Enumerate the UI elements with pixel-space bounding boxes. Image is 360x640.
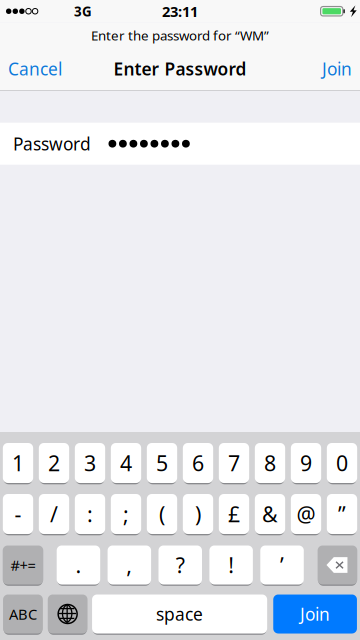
staticText: . [75, 551, 81, 579]
button[interactable]: ABC [3, 594, 43, 633]
button[interactable]: @ [291, 494, 321, 534]
staticText: 1 [12, 449, 24, 477]
button[interactable]: 2 [39, 443, 69, 483]
staticText: ( [159, 500, 165, 528]
button[interactable]: & [255, 494, 285, 534]
button[interactable]: Password [0, 123, 360, 165]
staticText: Cancel [8, 57, 62, 80]
staticText: @ [296, 500, 315, 528]
button[interactable]: 9 [291, 443, 321, 483]
staticText: 7 [228, 449, 240, 477]
button[interactable]: / [39, 494, 69, 534]
staticText: ? [176, 551, 185, 579]
staticText: : [87, 500, 93, 528]
button[interactable]: 4 [111, 443, 141, 483]
button[interactable]: , [108, 545, 151, 584]
button[interactable]: Join [313, 45, 360, 89]
button[interactable]: Delete [318, 545, 357, 584]
button[interactable]: ( [147, 494, 177, 534]
staticText: ) [195, 500, 201, 528]
button[interactable]: : [75, 494, 105, 534]
button[interactable]: ! [209, 545, 253, 584]
staticText: space [156, 602, 203, 625]
button[interactable]: ’ [260, 545, 304, 584]
staticText: ! [228, 551, 234, 579]
staticText: Join [322, 57, 352, 80]
button[interactable]: 7 [219, 443, 249, 483]
staticText: 6 [192, 449, 204, 477]
staticText: - [14, 500, 21, 528]
staticText: Password [13, 132, 91, 155]
button[interactable]: 6 [183, 443, 213, 483]
staticText: / [50, 500, 58, 528]
button[interactable]: 5 [147, 443, 177, 483]
button[interactable]: ) [183, 494, 213, 534]
button[interactable]: ? [158, 545, 202, 584]
button[interactable]: Next keyboard [48, 594, 87, 633]
button[interactable]: £ [219, 494, 249, 534]
staticText: #+= [10, 555, 35, 575]
staticText: 8 [264, 449, 276, 477]
button[interactable]: Join [273, 594, 357, 633]
button[interactable]: 1 [3, 443, 33, 483]
staticText: ; [123, 500, 129, 528]
staticText: & [262, 500, 278, 528]
button[interactable]: space [92, 594, 267, 633]
staticText: 3G [74, 2, 92, 20]
staticText: £ [228, 500, 240, 528]
staticText: ’ [280, 551, 284, 579]
staticText: 0 [336, 449, 348, 477]
button[interactable]: Cancel [0, 45, 71, 89]
staticText: ” [338, 500, 346, 528]
button[interactable]: #+= [3, 545, 43, 584]
staticText: Enter the password for “WM” [91, 26, 269, 44]
button[interactable]: ; [111, 494, 141, 534]
staticText: 5 [156, 449, 168, 477]
staticText: Enter Password [113, 57, 246, 80]
button[interactable]: - [3, 494, 33, 534]
button[interactable]: 8 [255, 443, 285, 483]
staticText: 23:11 [162, 1, 198, 21]
staticText: 3 [84, 449, 96, 477]
staticText: 9 [300, 449, 312, 477]
button[interactable]: ” [327, 494, 357, 534]
button[interactable]: 3 [75, 443, 105, 483]
staticText: 2 [48, 449, 60, 477]
staticText: ABC [9, 604, 37, 624]
staticText: , [126, 551, 132, 579]
button[interactable]: 0 [327, 443, 357, 483]
staticText: Join [300, 602, 330, 625]
staticText: 4 [120, 449, 132, 477]
button[interactable]: . [57, 545, 100, 584]
